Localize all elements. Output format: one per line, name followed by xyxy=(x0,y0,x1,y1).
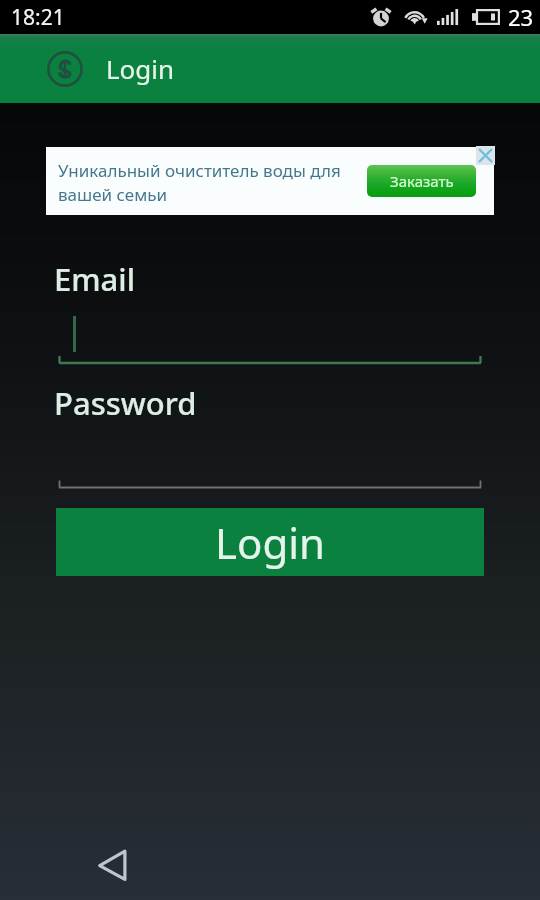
staticText: Login xyxy=(215,514,326,571)
staticText: Login xyxy=(106,51,175,86)
button[interactable]: Back xyxy=(80,833,144,897)
button[interactable]: Уникальный очиститель воды для вашей сем… xyxy=(46,147,494,215)
button[interactable] xyxy=(56,475,484,489)
button[interactable]: Login xyxy=(56,508,484,576)
button[interactable]: Close ad xyxy=(476,146,495,165)
staticText: Password xyxy=(54,382,197,423)
staticText: Заказать xyxy=(390,171,454,191)
button[interactable] xyxy=(56,325,484,365)
staticText: 23 xyxy=(508,2,534,32)
button[interactable]: Заказать xyxy=(367,165,476,197)
button[interactable]: App logo xyxy=(47,51,83,87)
staticText: Email xyxy=(54,258,136,299)
staticText: 18:21 xyxy=(11,3,65,32)
staticText: Уникальный очиститель воды для вашей сем… xyxy=(58,159,358,206)
